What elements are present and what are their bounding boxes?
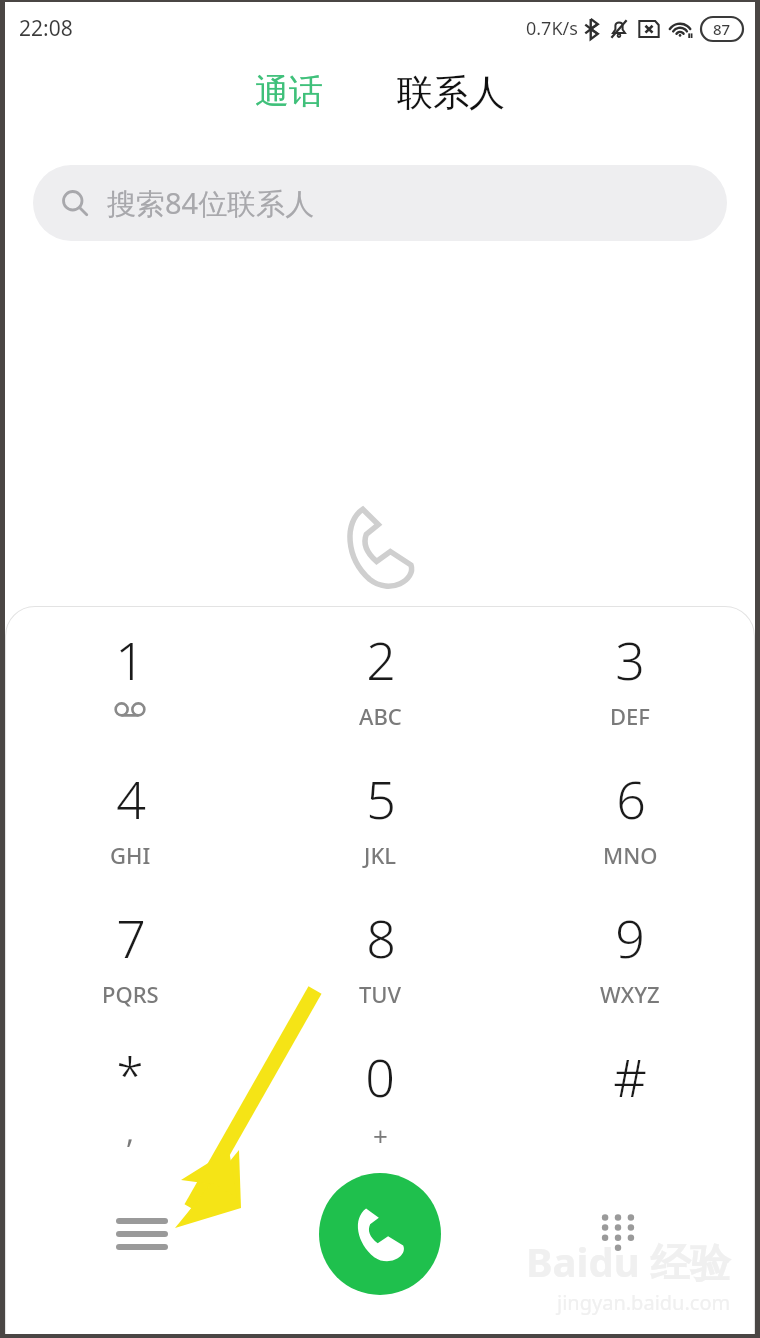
button[interactable]: Menu [100, 1192, 184, 1276]
staticText: DEF [610, 701, 650, 731]
staticText: 87 [713, 19, 731, 39]
button[interactable]: 联系人 [379, 64, 523, 121]
button[interactable]: 9 [505, 902, 755, 1041]
button[interactable]: Dialpad [576, 1192, 660, 1276]
button[interactable]: 搜索84位联系人 [33, 165, 727, 241]
button[interactable]: 5 [255, 763, 505, 902]
staticText: ABC [359, 701, 402, 731]
staticText: # [613, 1041, 647, 1112]
staticText: 通话 [255, 70, 323, 113]
staticText: , [126, 1111, 135, 1152]
staticText: 0 [365, 1041, 395, 1112]
button[interactable]: 8 [255, 902, 505, 1041]
staticText: 8 [366, 902, 396, 973]
staticText: 9 [615, 902, 645, 973]
staticText: GHI [110, 840, 151, 870]
staticText: 联系人 [397, 70, 505, 115]
button[interactable]: 4 [5, 763, 255, 902]
staticText: 5 [366, 763, 396, 834]
staticText: jingyan.baidu.com [557, 1289, 731, 1316]
staticText: 1 [115, 624, 145, 695]
staticText: 22:08 [19, 14, 73, 43]
staticText: TUV [359, 979, 402, 1009]
staticText: PQRS [102, 979, 159, 1009]
button[interactable]: 0 [255, 1041, 505, 1180]
staticText: MNO [603, 840, 658, 870]
button[interactable]: Call [319, 1173, 441, 1295]
staticText: + [373, 1118, 388, 1153]
button[interactable]: 2 [255, 624, 505, 763]
button[interactable]: 6 [505, 763, 755, 902]
staticText: 2 [366, 624, 396, 695]
staticText: * [116, 1041, 144, 1109]
button[interactable]: 3 [505, 624, 755, 763]
button[interactable]: 通话 [237, 64, 341, 119]
staticText: 7 [116, 902, 146, 973]
staticText: WXYZ [600, 979, 660, 1009]
staticText: 4 [116, 763, 146, 834]
button[interactable]: # [505, 1041, 755, 1180]
staticText: 0.7K/s [526, 16, 578, 41]
button[interactable]: 1 [5, 624, 255, 763]
staticText: 搜索84位联系人 [107, 183, 315, 223]
staticText: JKL [364, 840, 397, 870]
staticText: 3 [615, 624, 645, 695]
button[interactable]: * [5, 1041, 255, 1180]
button[interactable]: 7 [5, 902, 255, 1041]
staticText: 6 [616, 763, 646, 834]
staticText: Baidu 经验 [526, 1234, 731, 1289]
